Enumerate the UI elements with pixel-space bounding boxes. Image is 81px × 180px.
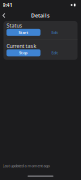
staticText: Current task (6, 42, 36, 49)
staticText: Edit (51, 30, 57, 35)
staticText: Status (6, 22, 22, 29)
staticText: Edit (51, 50, 57, 55)
staticText: 9:41 (2, 1, 12, 9)
staticText: Start (18, 30, 28, 35)
button[interactable]: Edit (51, 29, 57, 36)
staticText: Details (31, 12, 50, 19)
button[interactable]: Edit (51, 49, 57, 56)
button[interactable]: Back (0, 11, 8, 20)
button[interactable]: Stop (6, 49, 40, 56)
staticText: Last updated a moment ago (2, 163, 49, 168)
button[interactable]: Start (6, 29, 40, 36)
staticText: Stop (19, 50, 28, 55)
